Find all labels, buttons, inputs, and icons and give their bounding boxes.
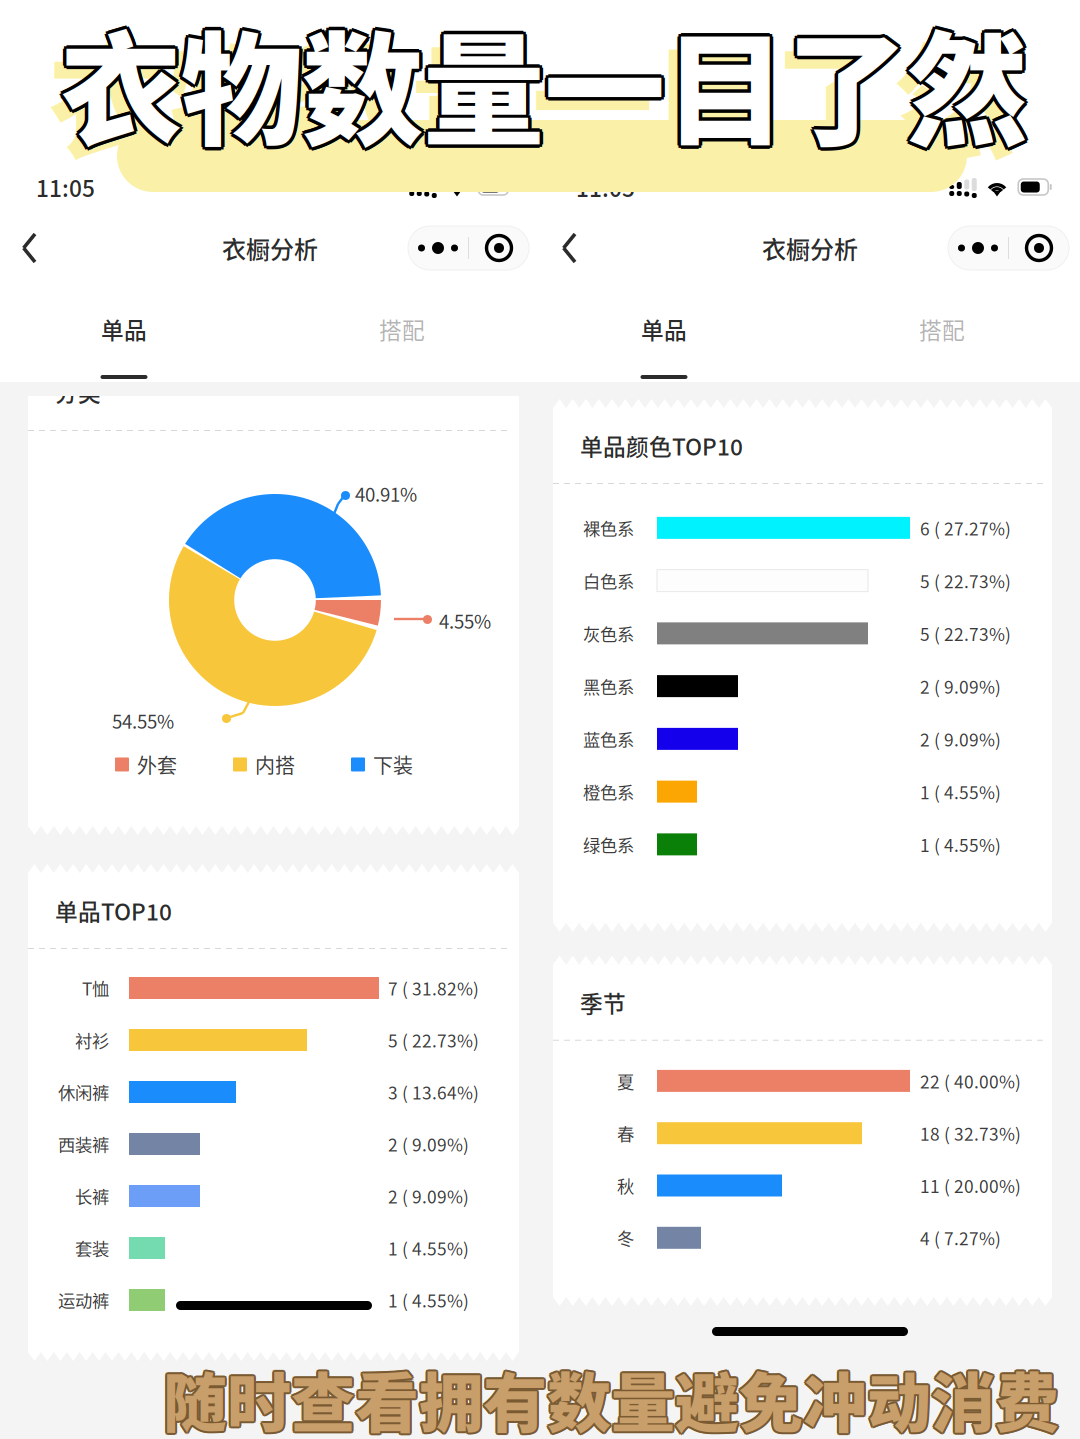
staticText: 40.91%	[355, 480, 417, 507]
staticText: 西装裤	[58, 1131, 109, 1157]
staticText: 2 ( 9.09%)	[388, 1183, 469, 1209]
staticText: 随时查看拥有数量避免冲动消费	[164, 1353, 1060, 1439]
staticText: 4.55%	[439, 607, 491, 634]
staticText: 蓝色系	[583, 726, 634, 751]
staticText: 黑色系	[583, 674, 634, 699]
staticText: T恤	[82, 975, 109, 1001]
staticText: 长裤	[75, 1183, 109, 1209]
staticText: 衣橱分析	[762, 231, 858, 265]
staticText: 随时查看拥有数量避免冲动消费	[161, 1353, 1057, 1439]
staticText: 18 ( 32.73%)	[920, 1121, 1021, 1146]
staticText: 衣物数量一目了然	[57, 0, 1025, 172]
staticText: 衣物数量一目了然	[57, 0, 1025, 167]
staticText: 随时查看拥有数量避免冲动消费	[163, 1350, 1059, 1439]
button[interactable]: Close mini program	[1009, 226, 1069, 270]
staticText: 秋	[617, 1173, 634, 1198]
staticText: 5 ( 22.73%)	[920, 568, 1011, 593]
button[interactable]: Close mini program	[469, 226, 529, 270]
staticText: 套装	[75, 1235, 109, 1261]
staticText: 随时查看拥有数量避免冲动消费	[165, 1352, 1061, 1439]
staticText: 衣物数量一目了然	[48, 7, 1016, 183]
staticText: 随时查看拥有数量避免冲动消费	[161, 1350, 1057, 1439]
staticText: 2 ( 9.09%)	[920, 674, 1001, 699]
staticText: 随时查看拥有数量避免冲动消费	[163, 1354, 1059, 1439]
button[interactable]: 搭配	[880, 311, 1004, 382]
staticText: 11:05	[36, 171, 95, 203]
staticText: 春	[617, 1121, 634, 1146]
staticText: 1 ( 4.55%)	[920, 832, 1001, 857]
button[interactable]: 单品	[602, 311, 726, 382]
staticText: 单品	[101, 313, 147, 345]
button[interactable]: More	[408, 226, 468, 270]
staticText: 衬衫	[75, 1027, 109, 1053]
staticText: 衣物数量一目了然	[60, 0, 1028, 170]
staticText: 衣物数量一目了然	[60, 0, 1028, 173]
staticText: 外套	[137, 750, 177, 779]
staticText: 白色系	[583, 568, 634, 593]
staticText: 单品	[641, 313, 687, 345]
staticText: 内搭	[255, 750, 295, 779]
staticText: 灰色系	[583, 621, 634, 646]
staticText: 衣物数量一目了然	[63, 0, 1031, 170]
staticText: 54.55%	[112, 707, 174, 734]
staticText: 裸色系	[583, 515, 634, 540]
staticText: 搭配	[919, 313, 965, 345]
staticText: 运动裤	[58, 1287, 109, 1313]
staticText: 7 ( 31.82%)	[388, 975, 479, 1001]
staticText: 4 ( 7.27%)	[920, 1225, 1001, 1250]
staticText: 季节	[580, 986, 626, 1019]
button[interactable]: 单品	[62, 311, 186, 382]
staticText: 1 ( 4.55%)	[388, 1287, 469, 1313]
staticText: 休闲裤	[58, 1079, 109, 1105]
staticText: 6 ( 27.27%)	[920, 515, 1011, 540]
staticText: 11 ( 20.00%)	[920, 1173, 1021, 1198]
button[interactable]: More	[948, 226, 1008, 270]
staticText: 11:05	[576, 171, 635, 203]
staticText: 5 ( 22.73%)	[388, 1027, 479, 1053]
staticText: 22 ( 40.00%)	[920, 1068, 1021, 1093]
staticText: 2 ( 9.09%)	[388, 1131, 469, 1157]
staticText: 衣物数量一目了然	[62, 0, 1030, 172]
staticText: 绿色系	[583, 832, 634, 857]
staticText: 搭配	[379, 313, 425, 345]
staticText: 橙色系	[583, 779, 634, 804]
staticText: 2 ( 9.09%)	[920, 726, 1001, 751]
staticText: 5 ( 22.73%)	[920, 621, 1011, 646]
staticText: 衣物数量一目了然	[60, 0, 1028, 166]
staticText: 衣橱分析	[222, 231, 318, 265]
staticText: 随时查看拥有数量避免冲动消费	[161, 1352, 1057, 1439]
staticText: 1 ( 4.55%)	[388, 1235, 469, 1261]
button[interactable]: 搭配	[340, 311, 464, 382]
staticText: 1 ( 4.55%)	[920, 779, 1001, 804]
staticText: 单品TOP10	[55, 894, 172, 927]
staticText: 夏	[617, 1068, 634, 1093]
staticText: 衣物数量一目了然	[57, 0, 1025, 170]
staticText: 分类	[55, 375, 101, 408]
staticText: 随时查看拥有数量避免冲动消费	[163, 1352, 1059, 1439]
staticText: 3 ( 13.64%)	[388, 1079, 479, 1105]
button[interactable]: Back	[0, 224, 57, 272]
staticText: 冬	[617, 1225, 634, 1250]
staticText: 随时查看拥有数量避免冲动消费	[164, 1350, 1060, 1439]
button[interactable]: Back	[540, 224, 597, 272]
staticText: 衣物数量一目了然	[62, 0, 1030, 167]
staticText: 下装	[373, 750, 413, 779]
staticText: 单品颜色TOP10	[580, 429, 743, 462]
